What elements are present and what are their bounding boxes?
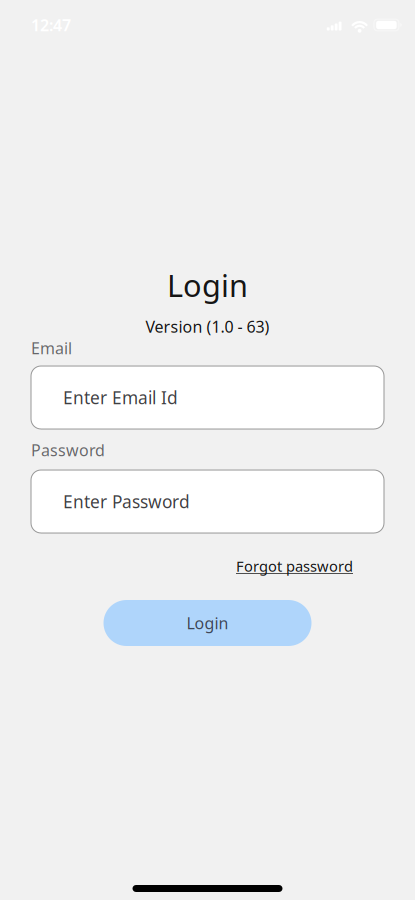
staticText: 12:47	[31, 14, 71, 36]
staticText: Enter Password	[63, 490, 190, 513]
staticText: Email	[31, 337, 72, 359]
button[interactable]: Login	[103, 600, 311, 646]
staticText: Enter Email Id	[63, 386, 178, 409]
staticText: Login	[167, 265, 248, 305]
button[interactable]: Email	[31, 366, 384, 429]
staticText: Login	[186, 612, 228, 634]
staticText: Password	[31, 439, 105, 461]
button[interactable]: Forgot password	[236, 558, 353, 574]
button[interactable]: Password	[31, 470, 384, 533]
staticText: Version (1.0 - 63)	[145, 316, 269, 337]
staticText: Forgot password	[236, 556, 353, 576]
